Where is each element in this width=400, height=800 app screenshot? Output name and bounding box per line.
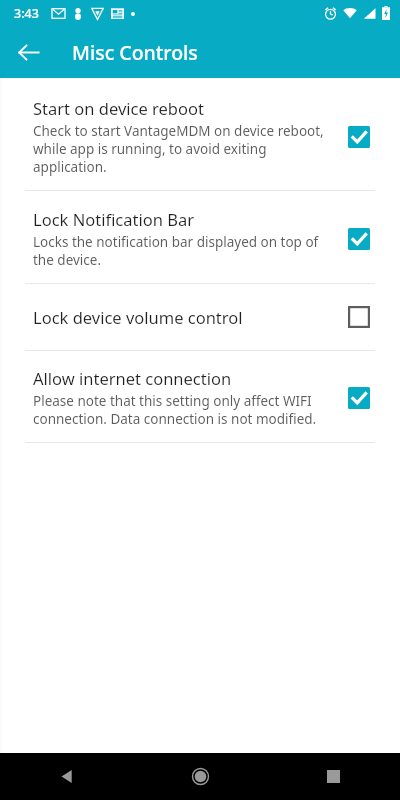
staticText: Check to start VantageMDM on device rebo… xyxy=(33,122,332,176)
staticText: Misc Controls xyxy=(72,39,198,66)
button[interactable]: Allow internet connection xyxy=(2,351,400,442)
staticText: Locks the notification bar displayed on … xyxy=(33,233,332,269)
staticText: Start on device reboot xyxy=(33,97,204,119)
staticText: Lock Notification Bar xyxy=(33,208,194,230)
button[interactable]: Back xyxy=(0,753,134,800)
button[interactable]: Home xyxy=(134,753,267,800)
staticText: Lock device volume control xyxy=(33,306,243,328)
button[interactable]: Unchecked xyxy=(342,300,376,334)
button[interactable]: Recent apps xyxy=(267,753,400,800)
button[interactable]: Back xyxy=(6,30,50,74)
button[interactable]: Start on device reboot xyxy=(2,79,400,190)
button[interactable]: Lock device volume control xyxy=(2,284,400,350)
button[interactable]: Checked xyxy=(342,222,376,256)
button[interactable]: Checked xyxy=(342,120,376,154)
staticText: Please note that this setting only affec… xyxy=(33,392,332,428)
staticText: Allow internet connection xyxy=(33,367,232,389)
button[interactable]: Lock Notification Bar xyxy=(2,191,400,283)
button[interactable]: Checked xyxy=(342,381,376,415)
staticText: 3:43 xyxy=(14,5,39,22)
